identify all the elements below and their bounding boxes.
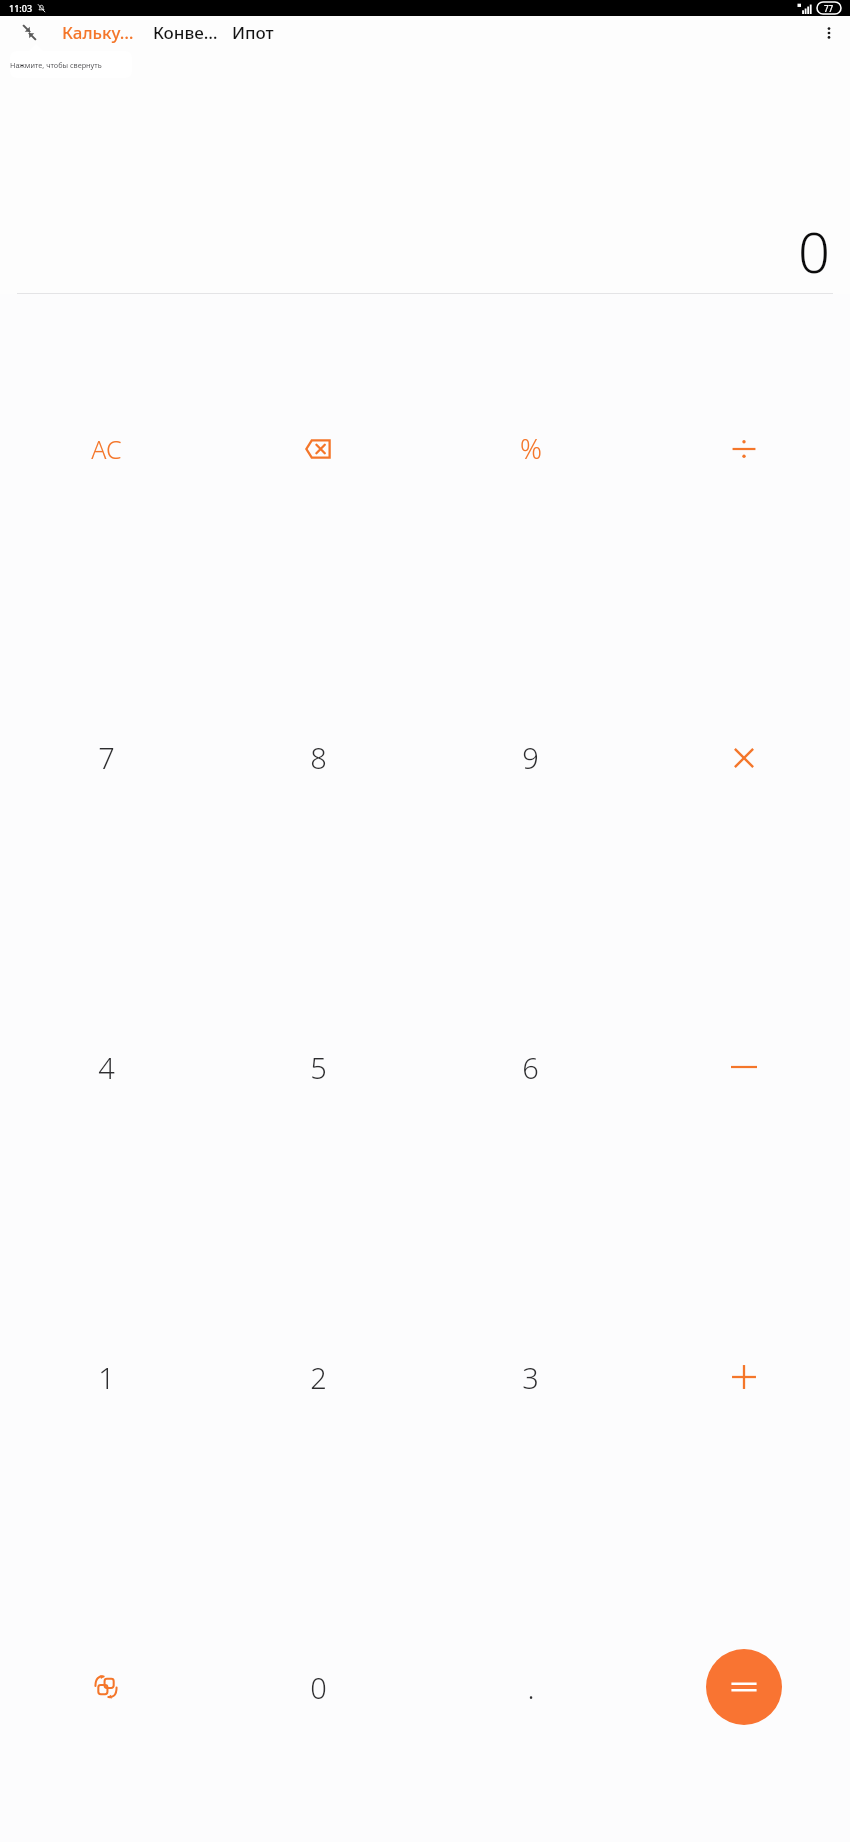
- button[interactable]: Равно: [706, 1649, 782, 1725]
- button[interactable]: 7: [0, 603, 212, 912]
- staticText: Кальку…: [62, 21, 134, 44]
- button[interactable]: Минус: [637, 912, 850, 1222]
- staticText: Нажмите, чтобы свернуть Калькулятор: [10, 60, 132, 70]
- button[interactable]: Плюс: [637, 1222, 850, 1532]
- button[interactable]: Удалить: [212, 294, 424, 603]
- button[interactable]: 0: [212, 1532, 424, 1842]
- staticText: 5: [310, 1048, 327, 1087]
- button[interactable]: Умножить: [637, 603, 850, 912]
- button[interactable]: AC: [0, 294, 212, 603]
- staticText: .: [527, 1668, 535, 1707]
- button[interactable]: 2: [212, 1222, 424, 1532]
- button[interactable]: Конвертировать: [0, 1532, 212, 1842]
- button[interactable]: 6: [424, 912, 637, 1222]
- staticText: 11:03: [9, 2, 33, 14]
- button[interactable]: 4: [0, 912, 212, 1222]
- staticText: 77: [824, 3, 834, 14]
- button[interactable]: 8: [212, 603, 424, 912]
- button[interactable]: 9: [424, 603, 637, 912]
- button[interactable]: Свернуть Калькулятор: [12, 16, 46, 49]
- button[interactable]: Конве…: [145, 16, 226, 49]
- button[interactable]: Ипот: [232, 16, 289, 49]
- staticText: 3: [522, 1358, 539, 1397]
- button[interactable]: 5: [212, 912, 424, 1222]
- staticText: 0: [310, 1668, 327, 1707]
- button[interactable]: Нажмите, чтобы свернуть Калькулятор: [10, 51, 132, 78]
- button[interactable]: 1: [0, 1222, 212, 1532]
- staticText: AC: [91, 432, 122, 466]
- staticText: Конве…: [153, 21, 218, 44]
- staticText: 7: [98, 738, 115, 777]
- staticText: %: [520, 430, 542, 467]
- staticText: 4: [98, 1048, 115, 1087]
- button[interactable]: 3: [424, 1222, 637, 1532]
- staticText: 0: [798, 213, 830, 289]
- button[interactable]: Кальку…: [57, 16, 138, 49]
- button[interactable]: Ещё: [812, 16, 846, 49]
- staticText: 6: [522, 1048, 539, 1087]
- staticText: 2: [310, 1358, 327, 1397]
- button[interactable]: Разделить: [637, 294, 850, 603]
- staticText: 1: [98, 1358, 115, 1397]
- staticText: Ипот: [232, 21, 274, 44]
- staticText: 8: [310, 738, 327, 777]
- staticText: 9: [522, 738, 539, 777]
- button[interactable]: %: [424, 294, 637, 603]
